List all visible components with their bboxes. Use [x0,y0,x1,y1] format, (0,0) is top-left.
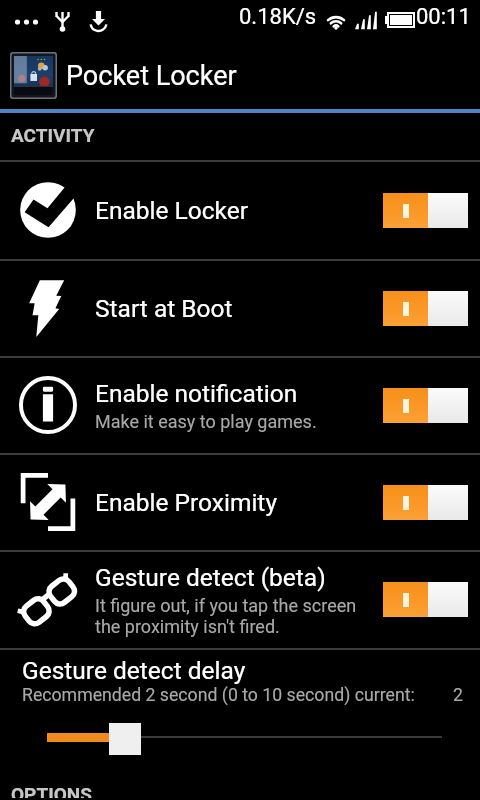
button[interactable]: Gesture detect delay slider [0,715,480,751]
staticText: Make it easy to play games. [95,411,317,432]
button[interactable]: Enable notification [0,358,480,452]
button[interactable]: Toggle [383,582,468,617]
staticText: 00:11 [416,4,471,30]
staticText: Pocket Locker [66,60,237,92]
button[interactable]: Toggle [383,388,468,423]
button[interactable]: Toggle [383,193,468,228]
staticText: 2 [453,685,463,706]
staticText: OPTIONS [11,783,92,798]
button[interactable]: Gesture detect (beta) [0,552,480,647]
button[interactable]: Pocket Locker [10,42,480,109]
staticText: Gesture detect delay [22,656,246,685]
staticText: Enable Proximity [95,488,277,517]
staticText: Recommended 2 second (0 to 10 second) cu… [22,685,415,706]
staticText: It figure out, if you tap the screen the… [95,595,357,637]
button[interactable]: Toggle [383,291,468,326]
staticText: Gesture detect (beta) [95,563,326,592]
staticText: Enable notification [95,379,298,408]
button[interactable]: Enable Proximity [0,455,480,549]
staticText: Enable Locker [95,196,249,225]
staticText: ACTIVITY [11,124,95,146]
staticText: Start at Boot [95,294,233,323]
staticText: 0.18K/s [239,4,317,30]
button[interactable]: Enable Locker [0,162,480,258]
button[interactable]: Toggle [383,485,468,520]
button[interactable]: Start at Boot [0,261,480,355]
